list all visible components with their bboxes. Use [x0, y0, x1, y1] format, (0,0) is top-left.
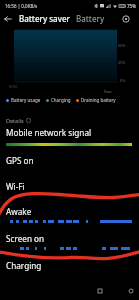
button[interactable]: Home: [61, 282, 139, 300]
staticText: Details: [6, 117, 24, 124]
staticText: Awake: [6, 206, 32, 217]
staticText: 50%: [118, 43, 126, 48]
staticText: Mobile network signal: [6, 127, 92, 138]
staticText: Battery: [76, 13, 105, 24]
staticText: Draining battery: [81, 97, 116, 103]
button[interactable]: GPS on: [0, 155, 139, 174]
button[interactable]: Settings: [119, 12, 133, 26]
staticText: Charging: [6, 260, 42, 271]
staticText: Now: [104, 89, 112, 94]
button[interactable]: Battery saver: [19, 13, 70, 24]
button[interactable]: Back: [1, 12, 15, 26]
staticText: 25%: [118, 60, 126, 65]
staticText: Screen on: [6, 233, 45, 244]
button[interactable]: Battery: [76, 13, 105, 24]
staticText: 16:56 | 0,0KB/s: [5, 3, 38, 9]
staticText: GPS on: [6, 155, 34, 166]
staticText: Wi-Fi: [6, 181, 25, 192]
staticText: 75%: [127, 3, 136, 9]
staticText: 0%: [120, 78, 126, 83]
button[interactable]: Awake: [0, 206, 139, 223]
button[interactable]: Mobile network signal: [0, 127, 139, 146]
button[interactable]: Recents: [30, 282, 139, 300]
button[interactable]: Keyboard: [112, 282, 139, 300]
staticText: Battery usage: [11, 97, 41, 103]
button[interactable]: Back: [91, 282, 139, 300]
button[interactable]: Charging: [0, 260, 139, 279]
staticText: 18:00: [8, 84, 18, 89]
button[interactable]: Screen on: [0, 233, 139, 250]
button[interactable]: Wi-Fi: [0, 181, 139, 200]
staticText: Battery saver: [19, 13, 70, 24]
staticText: Charging: [51, 97, 71, 103]
